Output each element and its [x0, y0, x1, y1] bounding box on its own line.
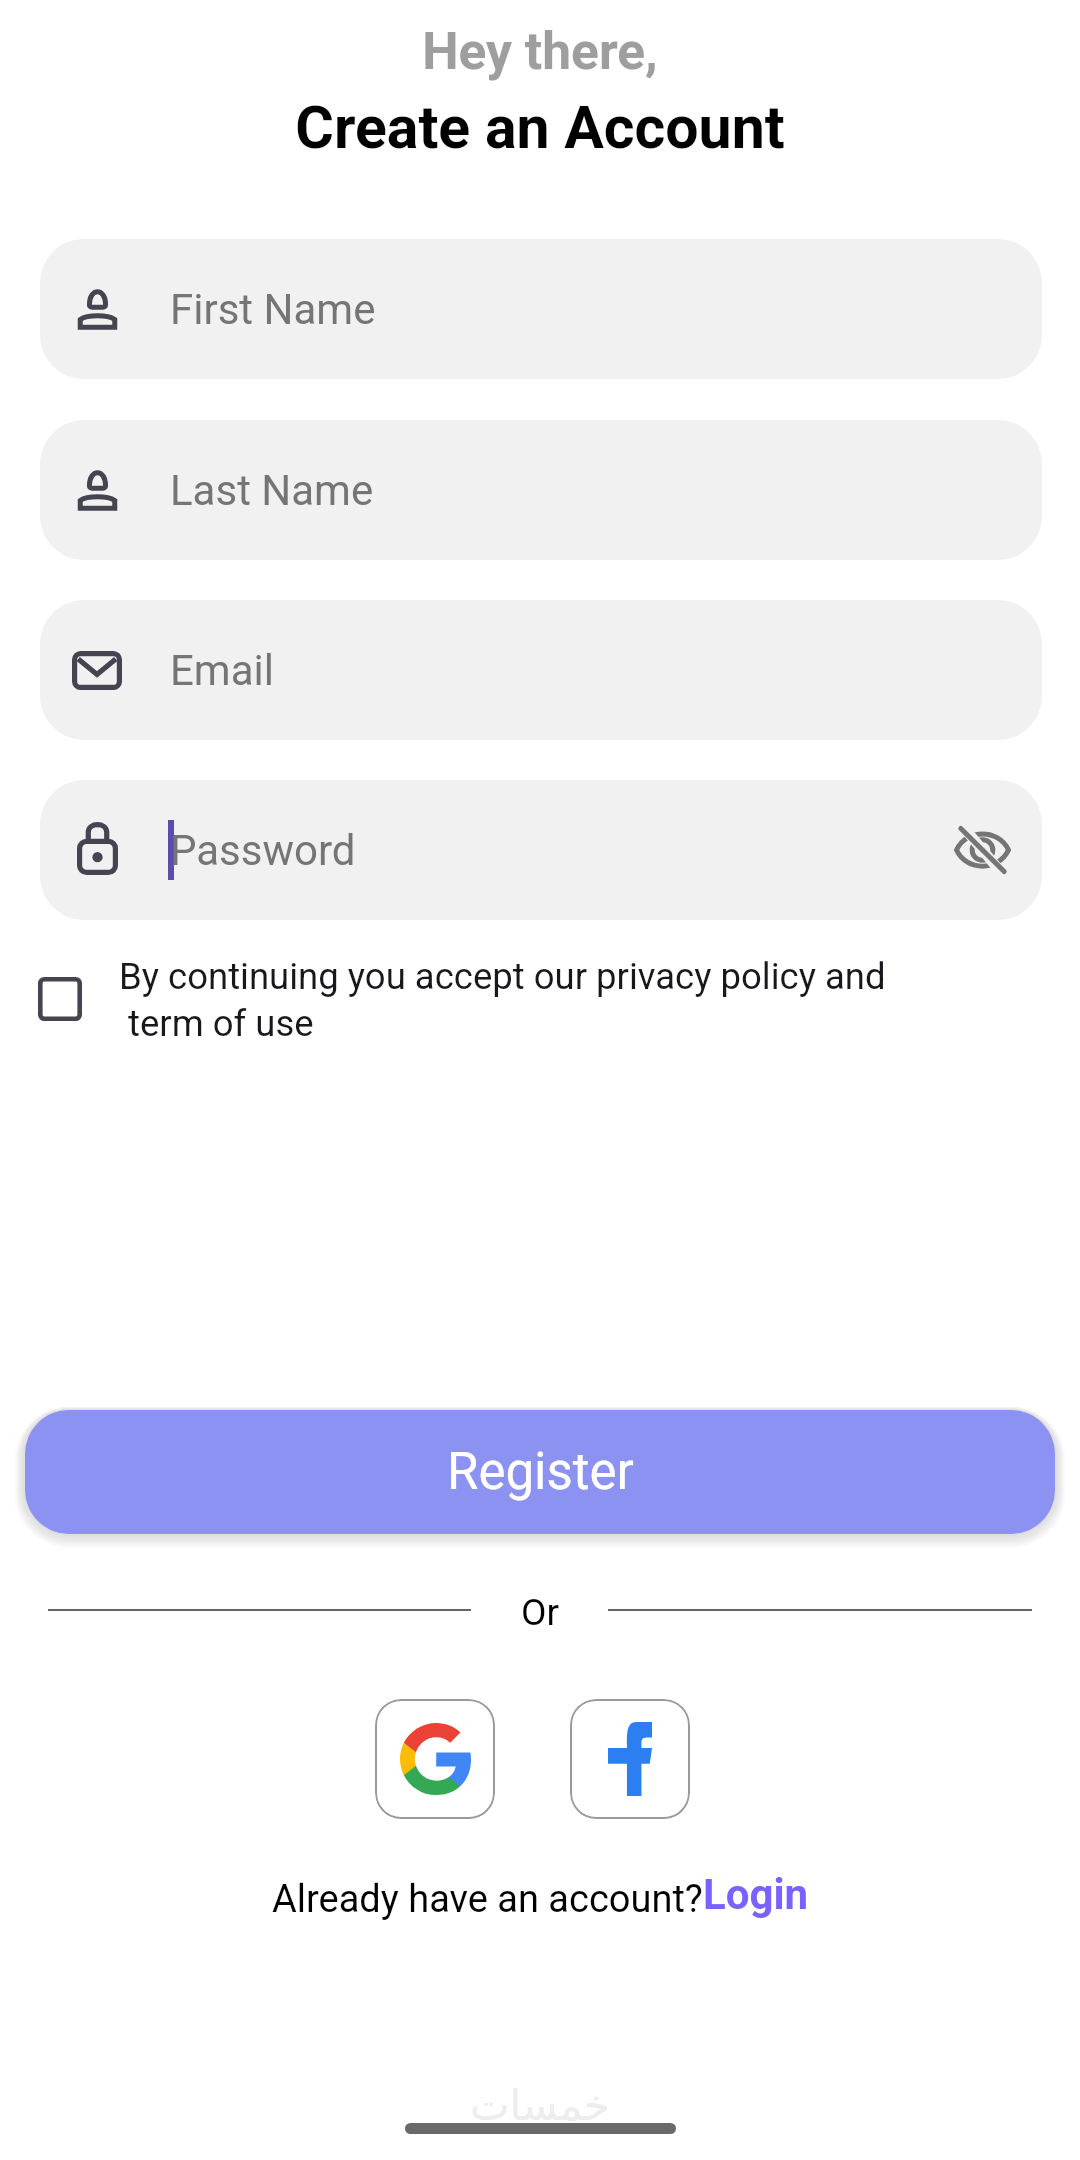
staticText: Register	[447, 1442, 634, 1502]
staticText: Or	[0, 1591, 1080, 1634]
button[interactable]: Email	[40, 600, 1042, 740]
button[interactable]: Login	[703, 1870, 809, 1919]
staticText: Last Name	[170, 466, 374, 515]
staticText: Login	[703, 1870, 809, 1919]
button[interactable]: Password	[40, 780, 1042, 920]
button[interactable]: First Name	[40, 239, 1042, 379]
button[interactable]: Show password	[947, 815, 1017, 885]
staticText: By continuing you accept our privacy pol…	[119, 955, 886, 1045]
staticText: Create an Account	[0, 93, 1080, 162]
staticText: Already have an account?	[272, 1877, 703, 1922]
staticText: خمسات	[0, 2081, 1080, 2130]
staticText: Password	[170, 826, 356, 875]
staticText: Hey there,	[0, 21, 1080, 81]
staticText: Email	[170, 646, 274, 695]
button[interactable]: Last Name	[40, 420, 1042, 560]
button[interactable]: Sign up with Facebook	[570, 1699, 690, 1819]
button[interactable]: Sign up with Google	[375, 1699, 495, 1819]
button[interactable]: Register	[25, 1410, 1055, 1534]
button[interactable]: By continuing you accept our privacy pol…	[38, 955, 898, 1045]
staticText: First Name	[170, 285, 376, 334]
